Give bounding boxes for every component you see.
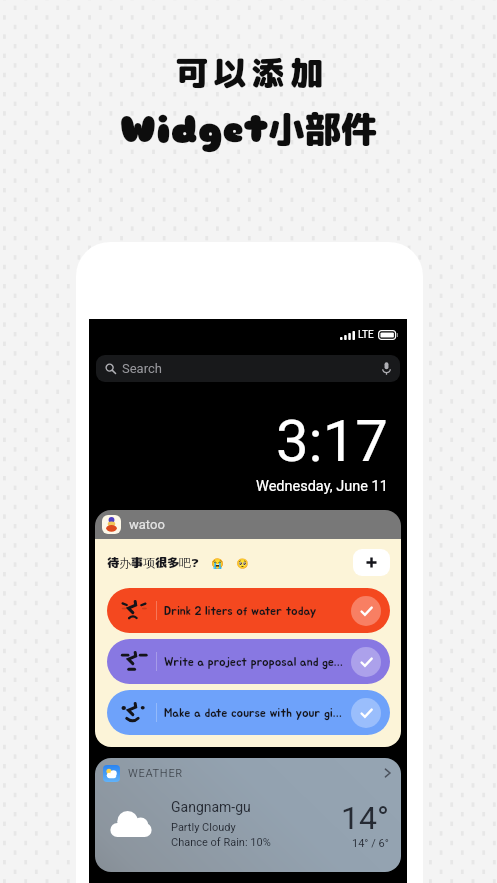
button[interactable]: Add task xyxy=(353,549,390,576)
button[interactable]: Search xyxy=(96,355,400,382)
staticText: Chance of Rain: 10% xyxy=(171,836,271,849)
staticText: Widget小部件 xyxy=(120,103,378,153)
staticText: Gangnam-gu xyxy=(171,799,251,815)
staticText: WEATHER xyxy=(128,767,183,780)
button[interactable]: Complete task xyxy=(351,596,381,626)
button[interactable]: Complete task xyxy=(351,698,381,728)
staticText: Search xyxy=(122,361,162,376)
staticText: Make a date course with your girlfriend xyxy=(164,707,347,719)
staticText: 14° / 6° xyxy=(352,837,389,850)
staticText: Drink 2 liters of water today xyxy=(164,605,347,617)
staticText: Write a project proposal and get a revie… xyxy=(164,656,347,668)
staticText: 待办事项很多吧? 😭 🥺 xyxy=(107,554,249,571)
button[interactable]: Complete task xyxy=(351,647,381,677)
staticText: 3:17 xyxy=(276,407,388,475)
staticText: 14° xyxy=(341,799,389,837)
button[interactable]: Write a project proposal and get a revie… xyxy=(107,639,390,684)
staticText: Wednesday, June 11 xyxy=(256,478,388,495)
button[interactable]: Make a date course with your girlfriend xyxy=(107,690,390,735)
staticText: watoo xyxy=(129,517,165,532)
button[interactable]: WEATHER xyxy=(95,758,401,872)
staticText: 可以添加 xyxy=(173,50,325,96)
staticText: LTE xyxy=(358,329,374,341)
button[interactable]: Drink 2 liters of water today xyxy=(107,588,390,633)
staticText: Partly Cloudy xyxy=(171,821,236,834)
